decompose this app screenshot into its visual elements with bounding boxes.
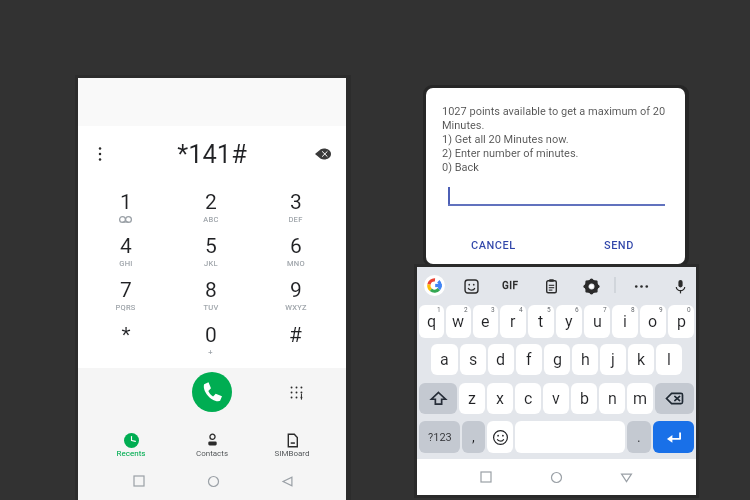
button[interactable]: Back bbox=[275, 469, 299, 493]
button[interactable]: 8 bbox=[168, 276, 253, 320]
button[interactable]: More options bbox=[87, 141, 113, 167]
staticText: k bbox=[637, 350, 646, 369]
button[interactable]: v bbox=[543, 383, 569, 414]
button[interactable]: g bbox=[544, 344, 570, 375]
staticText: t bbox=[538, 312, 544, 331]
button[interactable]: 6 bbox=[253, 232, 338, 276]
button[interactable]: Home bbox=[201, 469, 225, 493]
button[interactable]: ?123 bbox=[419, 421, 460, 453]
button[interactable]: Voice input bbox=[669, 275, 691, 297]
staticText: m bbox=[633, 389, 648, 408]
staticText: l bbox=[667, 350, 671, 369]
staticText: 6 bbox=[290, 234, 302, 259]
button[interactable]: Recent apps bbox=[474, 465, 498, 489]
button[interactable]: i bbox=[612, 305, 638, 338]
button[interactable]: Call bbox=[192, 372, 232, 412]
staticText: DEF bbox=[288, 215, 303, 224]
button[interactable]: 9 bbox=[253, 276, 338, 320]
button[interactable]: Recents bbox=[91, 432, 171, 458]
button[interactable]: 4 bbox=[83, 232, 168, 276]
button[interactable]: w bbox=[446, 305, 471, 338]
button[interactable]: n bbox=[599, 383, 625, 414]
button[interactable]: Text input field bbox=[448, 186, 665, 206]
button[interactable]: t bbox=[528, 305, 554, 338]
button[interactable]: SIMBoard bbox=[252, 432, 332, 458]
button[interactable]: a bbox=[431, 344, 458, 375]
staticText: j bbox=[611, 350, 615, 369]
button[interactable]: z bbox=[459, 383, 485, 414]
staticText: 4 bbox=[519, 306, 523, 314]
staticText: . bbox=[637, 429, 641, 445]
staticText: h bbox=[581, 350, 590, 369]
button[interactable]: , bbox=[462, 421, 485, 453]
button[interactable]: e bbox=[473, 305, 498, 338]
staticText: 9 bbox=[659, 306, 663, 314]
button[interactable]: CANCEL bbox=[465, 235, 522, 256]
button[interactable]: Backspace bbox=[655, 383, 694, 414]
button[interactable]: Emoji bbox=[487, 421, 513, 453]
staticText: 0 bbox=[687, 306, 691, 314]
button[interactable]: . bbox=[627, 421, 651, 453]
button[interactable]: * bbox=[83, 321, 168, 365]
staticText: 1 bbox=[120, 190, 132, 215]
button[interactable]: # bbox=[253, 321, 338, 365]
staticText: 2 bbox=[464, 306, 468, 314]
button[interactable]: Recent apps bbox=[127, 469, 151, 493]
button[interactable]: Dialpad bbox=[284, 380, 308, 404]
staticText: x bbox=[496, 389, 504, 408]
button[interactable]: 3 bbox=[253, 188, 338, 232]
button[interactable]: o bbox=[640, 305, 666, 338]
button[interactable]: l bbox=[656, 344, 682, 375]
button[interactable]: Enter bbox=[653, 421, 694, 453]
staticText: 3 bbox=[290, 190, 302, 215]
staticText: # bbox=[289, 323, 302, 348]
staticText: 5 bbox=[547, 306, 551, 314]
button[interactable]: h bbox=[572, 344, 598, 375]
button[interactable]: x bbox=[487, 383, 513, 414]
button[interactable]: s bbox=[460, 344, 486, 375]
button[interactable]: p bbox=[668, 305, 694, 338]
button[interactable]: Backspace bbox=[312, 143, 334, 165]
staticText: 9 bbox=[290, 278, 302, 303]
staticText: b bbox=[580, 389, 589, 408]
button[interactable]: 5 bbox=[168, 232, 253, 276]
staticText: SIMBoard bbox=[252, 449, 332, 458]
button[interactable]: k bbox=[628, 344, 654, 375]
button[interactable]: 2 bbox=[168, 188, 253, 232]
button[interactable]: 0 bbox=[168, 321, 253, 365]
button[interactable]: d bbox=[488, 344, 514, 375]
staticText: n bbox=[608, 389, 617, 408]
button[interactable]: r bbox=[500, 305, 526, 338]
button[interactable]: j bbox=[600, 344, 626, 375]
staticText: z bbox=[468, 389, 476, 408]
staticText: * bbox=[121, 323, 131, 348]
staticText: u bbox=[593, 312, 602, 331]
staticText: PQRS bbox=[115, 303, 136, 312]
button[interactable]: Settings bbox=[580, 275, 602, 297]
button[interactable]: 1 bbox=[83, 188, 168, 232]
button[interactable]: m bbox=[627, 383, 653, 414]
button[interactable]: Contacts bbox=[172, 432, 252, 458]
button[interactable]: y bbox=[556, 305, 582, 338]
staticText: 7 bbox=[120, 278, 132, 303]
button[interactable]: More options bbox=[630, 275, 652, 297]
button[interactable]: u bbox=[584, 305, 610, 338]
staticText: ABC bbox=[203, 215, 219, 224]
button[interactable]: 7 bbox=[83, 276, 168, 320]
button[interactable]: f bbox=[516, 344, 542, 375]
button[interactable] bbox=[423, 274, 445, 296]
button[interactable]: Shift bbox=[419, 383, 457, 414]
button[interactable]: b bbox=[571, 383, 597, 414]
button[interactable]: Clipboard bbox=[540, 275, 562, 297]
button[interactable]: q bbox=[419, 305, 444, 338]
staticText: JKL bbox=[204, 259, 218, 268]
button[interactable]: Stickers bbox=[460, 275, 482, 297]
button[interactable]: GIF bbox=[499, 275, 521, 297]
button[interactable]: c bbox=[515, 383, 541, 414]
staticText: 3 bbox=[491, 306, 495, 314]
button[interactable]: Back bbox=[614, 465, 638, 489]
button[interactable]: SEND bbox=[598, 235, 640, 256]
staticText: 7 bbox=[603, 306, 607, 314]
button[interactable]: Home bbox=[544, 465, 568, 489]
